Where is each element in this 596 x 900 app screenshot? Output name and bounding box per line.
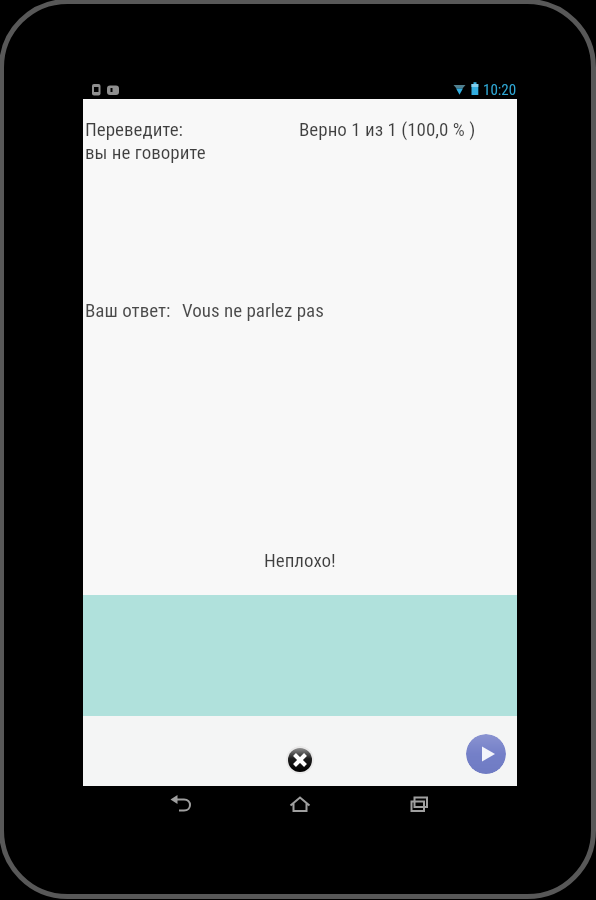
button[interactable] xyxy=(466,734,506,774)
button[interactable] xyxy=(398,790,438,820)
staticText: Неплохо! xyxy=(264,549,336,571)
staticText: 10:20 xyxy=(483,81,517,99)
staticText: Верно 1 из 1 (100,0 % ) xyxy=(299,118,476,140)
staticText: Переведите: xyxy=(85,118,183,140)
button[interactable] xyxy=(286,746,314,774)
button[interactable] xyxy=(162,790,202,820)
staticText: вы не говорите xyxy=(85,141,206,163)
staticText: Ваш ответ: xyxy=(85,299,171,321)
staticText: Vous ne parlez pas xyxy=(182,299,324,321)
button[interactable] xyxy=(280,790,320,820)
